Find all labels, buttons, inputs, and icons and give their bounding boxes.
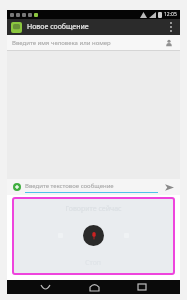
button[interactable]: Введите имя человека или номер: [7, 35, 180, 50]
button[interactable]: Говорите сейчас: [14, 199, 173, 273]
button[interactable]: Ещё: [166, 19, 176, 35]
button[interactable]: Добавить вложение: [11, 181, 23, 193]
button[interactable]: Главный экран: [83, 280, 105, 294]
button[interactable]: Выбрать контакт: [163, 37, 175, 49]
staticText: Введите имя человека или номер: [12, 39, 111, 47]
staticText: Введите текстовое сообщение: [25, 182, 114, 190]
button[interactable]: Отправить: [162, 180, 176, 194]
staticText: Новое сообщение: [27, 22, 89, 32]
button[interactable]: Остановить запись: [83, 225, 104, 246]
staticText: 12:05: [164, 11, 177, 18]
button[interactable]: Назад: [34, 280, 56, 294]
staticText: Говорите сейчас: [65, 204, 122, 214]
button[interactable]: Недавние приложения: [131, 280, 153, 294]
